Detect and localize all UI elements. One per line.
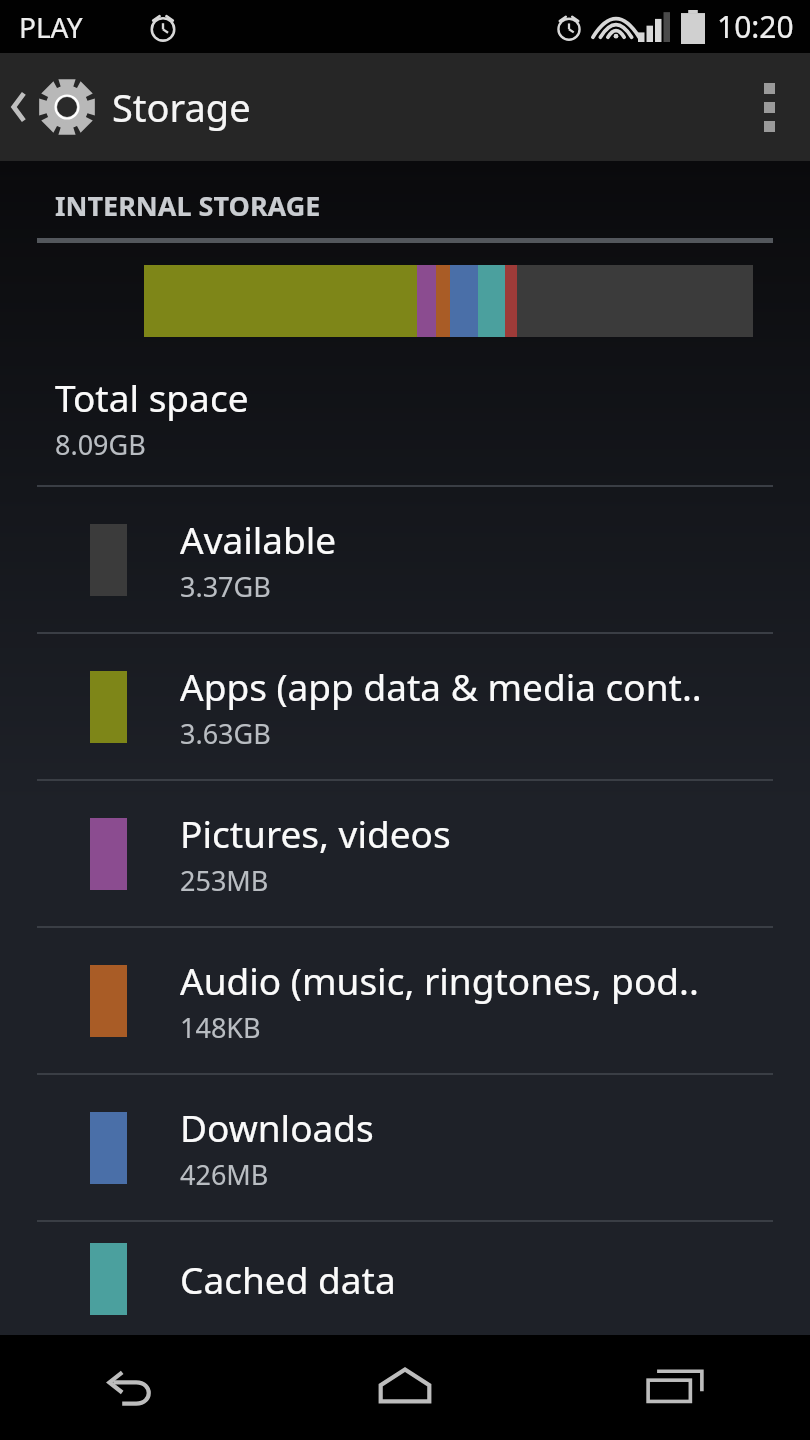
staticText: 3.37GB bbox=[180, 568, 271, 605]
staticText: 253MB bbox=[180, 862, 269, 899]
button[interactable]: Available bbox=[0, 487, 810, 632]
staticText: Total space bbox=[55, 372, 249, 422]
button[interactable]: Pictures, videos bbox=[0, 781, 810, 926]
staticText: 3.63GB bbox=[180, 715, 271, 752]
staticText: Available bbox=[180, 514, 337, 564]
staticText: 148KB bbox=[180, 1009, 261, 1046]
staticText: 8.09GB bbox=[55, 426, 146, 463]
button[interactable]: Downloads bbox=[0, 1075, 810, 1220]
button[interactable]: More options bbox=[729, 53, 810, 161]
button[interactable]: Back bbox=[0, 1335, 270, 1440]
staticText: Apps (app data & media cont.. bbox=[180, 661, 702, 711]
button[interactable]: Storage bbox=[0, 68, 267, 146]
staticText: PLAY bbox=[19, 8, 83, 46]
staticText: Storage bbox=[112, 81, 251, 133]
staticText: 426MB bbox=[180, 1156, 269, 1193]
staticText: Cached data bbox=[180, 1254, 396, 1304]
button[interactable]: Cached data bbox=[0, 1222, 810, 1335]
button[interactable]: Home bbox=[270, 1335, 540, 1440]
button[interactable]: Apps (app data & media cont.. bbox=[0, 634, 810, 779]
staticText: Downloads bbox=[180, 1102, 374, 1152]
button[interactable]: Recents bbox=[540, 1335, 810, 1440]
staticText: INTERNAL STORAGE bbox=[55, 187, 321, 224]
staticText: 10:20 bbox=[717, 6, 794, 47]
button[interactable]: Total space bbox=[0, 358, 810, 485]
staticText: Pictures, videos bbox=[180, 808, 451, 858]
button[interactable]: Audio (music, ringtones, pod.. bbox=[0, 928, 810, 1073]
staticText: Audio (music, ringtones, pod.. bbox=[180, 955, 699, 1005]
